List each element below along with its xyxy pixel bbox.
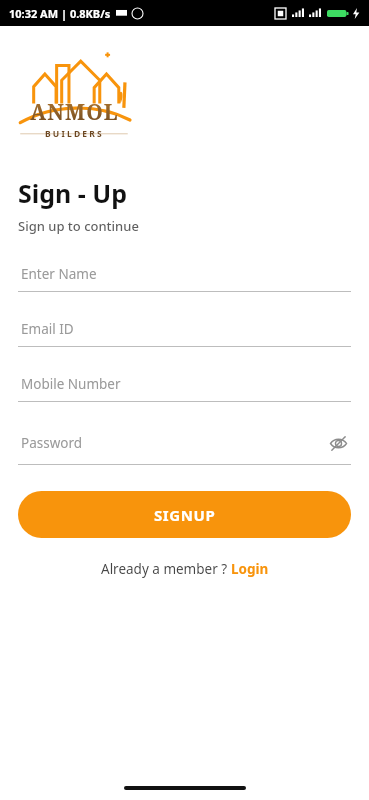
button[interactable]: Login <box>231 560 269 578</box>
staticText: SIGNUP <box>154 505 216 525</box>
staticText: Sign up to continue <box>18 217 139 235</box>
staticText: Password <box>21 434 325 452</box>
staticText: 10:32 AM | 0.8KB/s <box>9 6 111 21</box>
button[interactable]: Mobile Number <box>18 375 351 402</box>
button[interactable]: Password <box>18 430 351 465</box>
staticText: Sign - Up <box>18 176 128 210</box>
staticText: BUILDERS <box>45 128 104 140</box>
button[interactable]: SIGNUP <box>18 491 351 538</box>
staticText: Login <box>231 560 269 578</box>
staticText: Mobile Number <box>21 375 351 393</box>
button[interactable]: Toggle password visibility <box>325 430 351 456</box>
staticText: ANMOL <box>30 98 119 127</box>
button[interactable]: Enter Name <box>18 265 351 292</box>
staticText: Email ID <box>21 320 351 338</box>
button[interactable]: Email ID <box>18 320 351 347</box>
staticText: Already a member ? <box>101 560 231 578</box>
staticText: Enter Name <box>21 265 351 283</box>
